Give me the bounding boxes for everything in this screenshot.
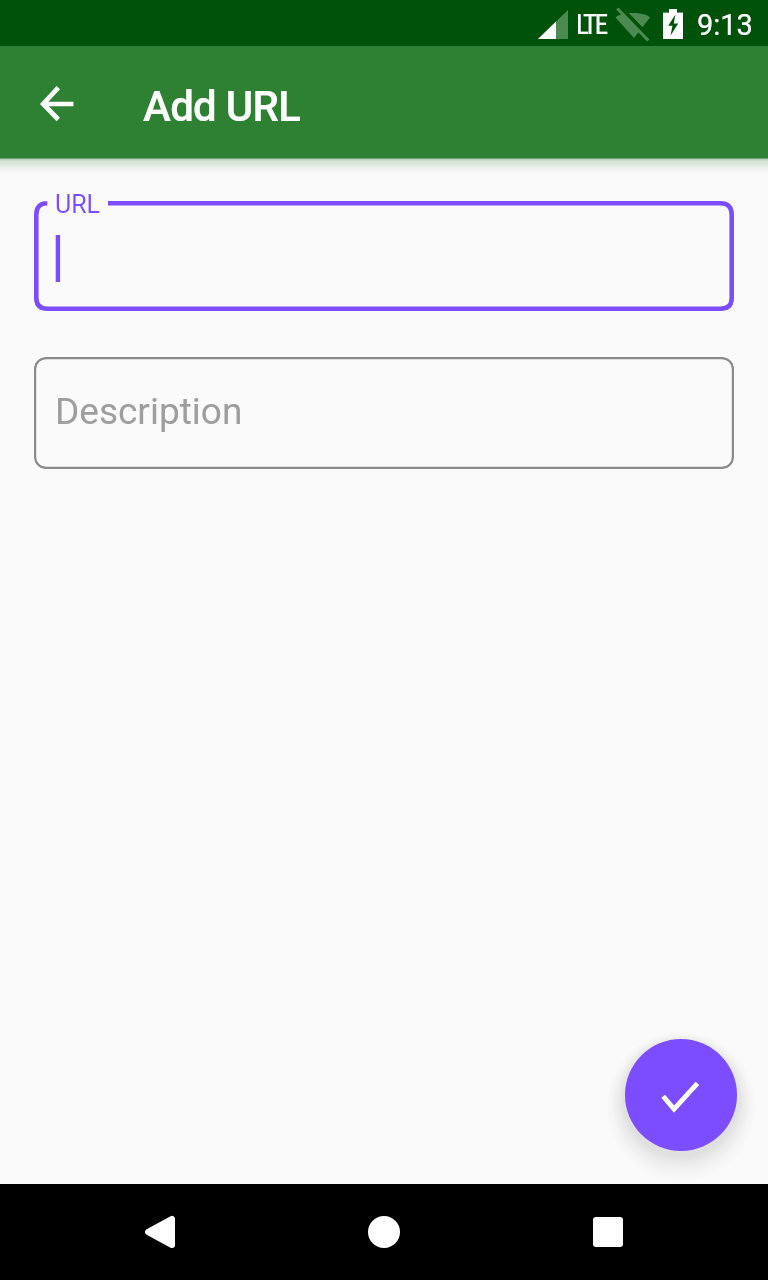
- staticText: 9:13: [697, 8, 753, 42]
- staticText: LTE: [576, 9, 607, 41]
- staticText: Add URL: [143, 82, 301, 131]
- staticText: URL: [55, 190, 101, 219]
- button[interactable]: Save: [625, 1039, 737, 1151]
- button[interactable]: Recent apps: [560, 1184, 656, 1280]
- button[interactable]: Description: [34, 357, 734, 469]
- button[interactable]: Home: [336, 1184, 432, 1280]
- button[interactable]: URL: [34, 201, 734, 311]
- button[interactable]: Back: [32, 80, 80, 128]
- button[interactable]: Back: [112, 1184, 208, 1280]
- staticText: Description: [55, 390, 243, 433]
